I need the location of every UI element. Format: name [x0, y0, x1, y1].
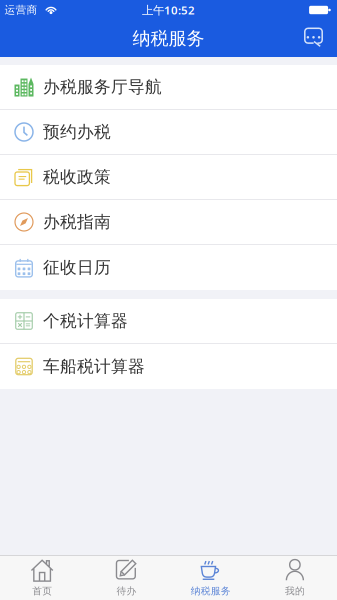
button[interactable]: 消息	[304, 22, 337, 54]
button[interactable]: 个税计算器	[0, 299, 337, 344]
button[interactable]: 我的	[253, 556, 337, 600]
button[interactable]: 首页	[0, 556, 84, 600]
staticText: 税收政策	[43, 166, 111, 187]
staticText: 待办	[116, 585, 136, 597]
button[interactable]: 待办	[84, 556, 168, 600]
button[interactable]: 预约办税	[0, 110, 337, 155]
staticText: 个税计算器	[43, 310, 128, 331]
staticText: 办税指南	[43, 211, 111, 232]
button[interactable]: 税收政策	[0, 155, 337, 200]
staticText: 征收日历	[43, 257, 111, 278]
staticText: 办税服务厅导航	[43, 76, 162, 97]
staticText: 我的	[285, 585, 305, 597]
staticText: 运营商	[4, 3, 37, 17]
staticText: 上午10:52	[142, 2, 195, 18]
staticText: 预约办税	[43, 121, 111, 142]
button[interactable]: 办税服务厅导航	[0, 65, 337, 110]
staticText: 车船税计算器	[43, 356, 145, 377]
staticText: 纳税服务	[191, 585, 231, 597]
staticText: 纳税服务	[132, 27, 204, 50]
staticText: 首页	[32, 585, 52, 597]
button[interactable]: 车船税计算器	[0, 344, 337, 389]
button[interactable]: 办税指南	[0, 200, 337, 245]
button[interactable]: 征收日历	[0, 245, 337, 290]
button[interactable]: 纳税服务	[168, 556, 253, 600]
